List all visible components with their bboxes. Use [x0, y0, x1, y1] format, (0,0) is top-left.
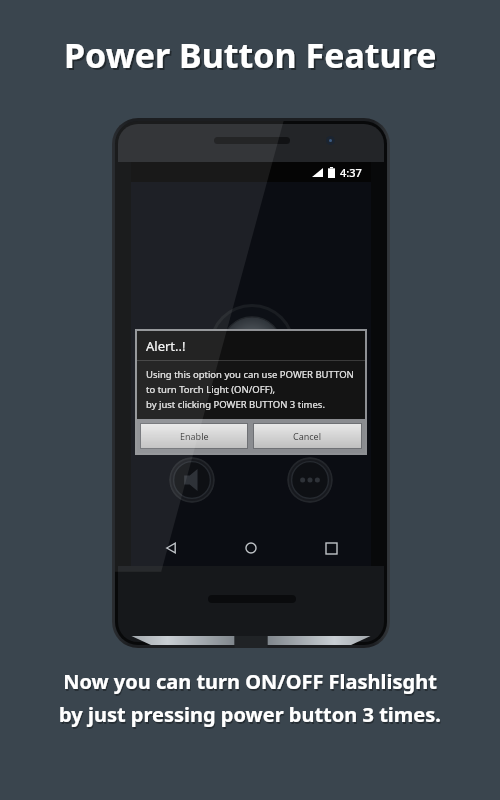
- staticText: Power Button Feature: [66, 34, 439, 80]
- button[interactable]: Enable: [141, 424, 247, 448]
- button[interactable]: Recent apps: [291, 530, 371, 566]
- staticText: Power Button Feature: [64, 32, 437, 78]
- staticText: by just clicking POWER BUTTON 3 times.: [146, 398, 325, 411]
- staticText: Cancel: [293, 430, 322, 442]
- staticText: Enable: [180, 430, 209, 442]
- button[interactable]: Back: [131, 530, 211, 566]
- button[interactable]: Cancel: [254, 424, 361, 448]
- staticText: Using this option you can use POWER BUTT…: [146, 368, 354, 381]
- staticText: by just pressing power button 3 times.: [59, 701, 441, 728]
- staticText: to turn Torch Light (ON/OFF),: [146, 383, 276, 396]
- staticText: Now you can turn ON/OFF Flashlisght: [64, 670, 438, 697]
- button[interactable]: Sound: [169, 457, 215, 503]
- staticText: Now you can turn ON/OFF Flashlisght: [63, 668, 437, 695]
- staticText: by just pressing power button 3 times.: [60, 703, 442, 730]
- button[interactable]: More options: [287, 457, 333, 503]
- button[interactable]: Home: [211, 530, 291, 566]
- staticText: Alert..!: [146, 337, 186, 355]
- staticText: 4:37: [340, 165, 362, 180]
